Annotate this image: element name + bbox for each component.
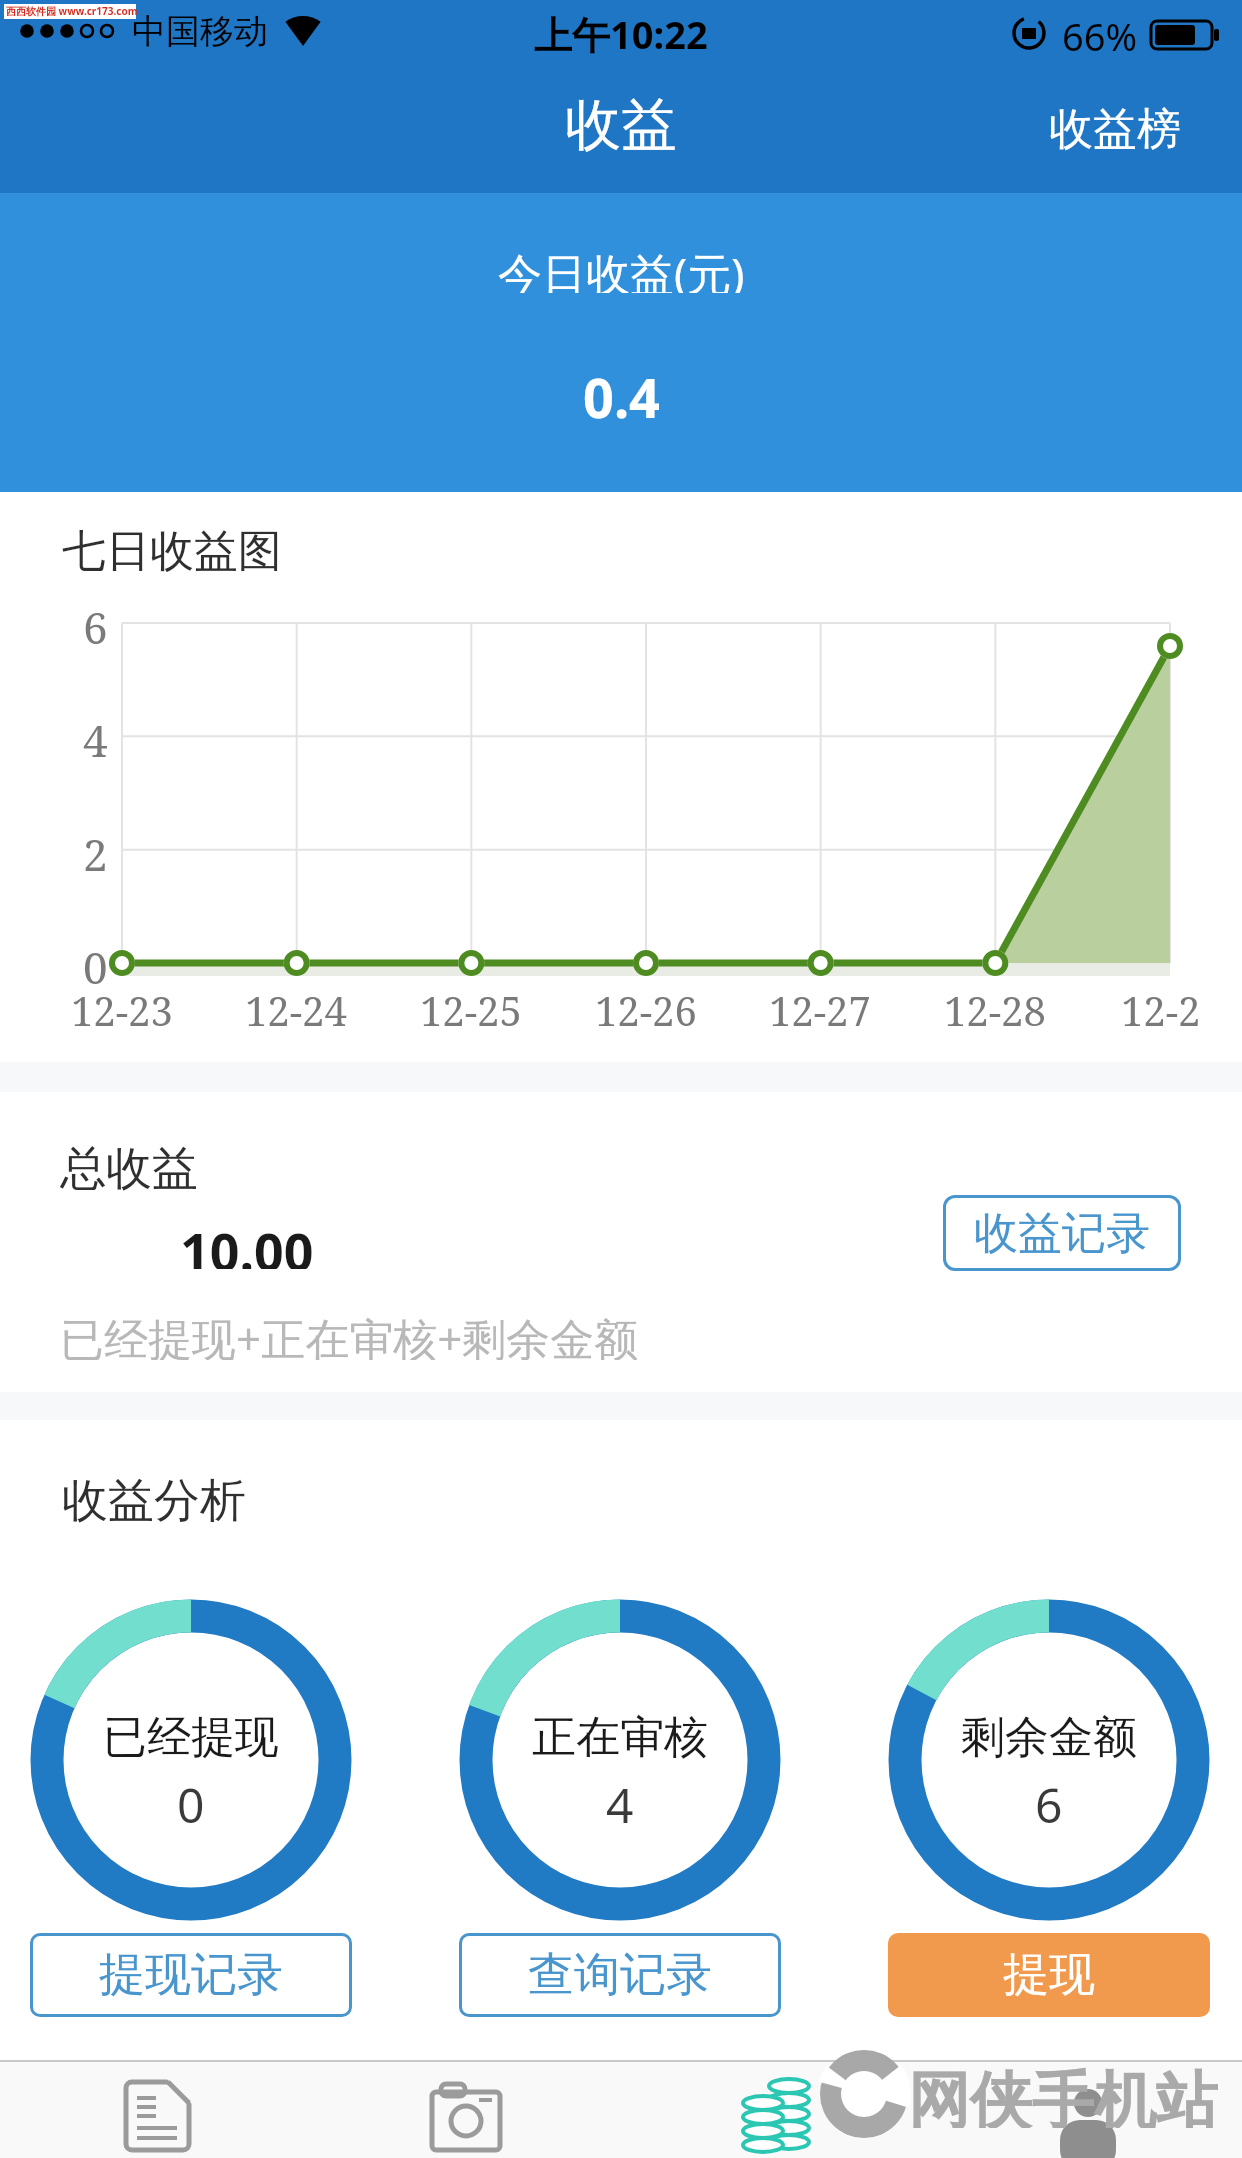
staticText: 0 [83, 937, 108, 989]
button[interactable]: 收益榜 [1030, 102, 1200, 154]
staticText: 2 [83, 824, 108, 876]
button[interactable] [310, 2062, 620, 2158]
button[interactable] [620, 2062, 930, 2158]
staticText: 收益分析 [62, 1472, 246, 1524]
button[interactable] [0, 2062, 310, 2158]
staticText: 查询记录 [528, 1946, 712, 2004]
staticText: 0 [177, 1772, 205, 1824]
staticText: 今日收益(元) [498, 243, 745, 293]
staticText: 提现记录 [99, 1946, 283, 2004]
staticText: 网侠手机站 [908, 2062, 1218, 2128]
staticText: 总收益 [60, 1140, 198, 1192]
staticText: 12-26 [595, 983, 697, 1031]
staticText: 6 [83, 597, 108, 649]
staticText: 收益记录 [974, 1206, 1150, 1261]
staticText: 七日收益图 [62, 524, 282, 572]
staticText: 12-23 [71, 983, 173, 1031]
staticText: 西西软件园 www.cr173.com [6, 4, 138, 18]
staticText: 已经提现+正在审核+剩余金额 [60, 1308, 639, 1360]
staticText: 10.00 [180, 1215, 314, 1269]
staticText: 正在审核 [532, 1710, 708, 1760]
button[interactable] [930, 2062, 1240, 2158]
staticText: 0.4 [583, 360, 660, 420]
button[interactable]: 查询记录 [459, 1933, 781, 2017]
staticText: 收益榜 [1049, 102, 1181, 154]
staticText: 6 [1035, 1772, 1063, 1824]
staticText: 收益 [565, 90, 677, 160]
staticText: 66% [1062, 10, 1138, 52]
button[interactable]: 提现 [888, 1933, 1210, 2017]
staticText: 12-29 [1121, 983, 1212, 1031]
staticText: 12-25 [420, 983, 522, 1031]
staticText: 剩余金额 [961, 1710, 1137, 1760]
staticText: 提现 [1003, 1946, 1095, 2004]
staticText: 12-24 [245, 983, 347, 1031]
staticText: 中国移动 [132, 10, 268, 52]
staticText: 12-28 [944, 983, 1046, 1031]
staticText: 上午10:22 [534, 8, 708, 54]
staticText: 4 [83, 710, 108, 762]
staticText: 已经提现 [103, 1710, 279, 1760]
button[interactable]: 提现记录 [30, 1933, 352, 2017]
button[interactable]: 收益记录 [943, 1195, 1181, 1271]
staticText: 12-27 [769, 983, 871, 1031]
staticText: 4 [606, 1772, 634, 1824]
